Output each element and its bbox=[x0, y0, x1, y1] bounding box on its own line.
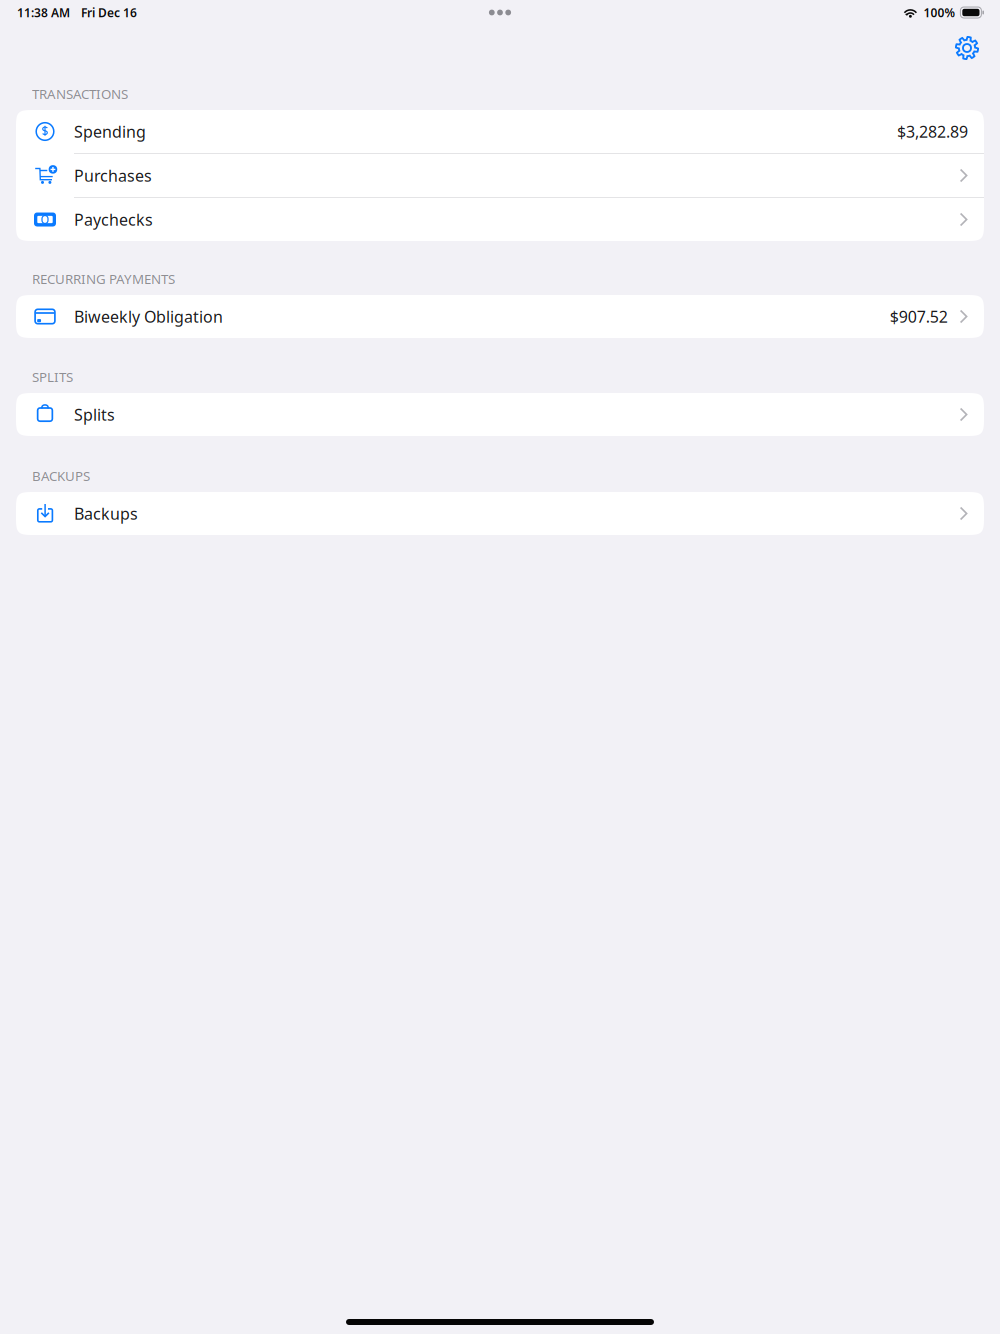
staticText: Spending bbox=[74, 121, 146, 142]
staticText: $3,282.89 bbox=[897, 121, 968, 142]
button[interactable]: Paychecks bbox=[16, 198, 984, 241]
staticText: 100% bbox=[923, 4, 955, 20]
staticText: Paychecks bbox=[74, 209, 153, 230]
staticText: Purchases bbox=[74, 165, 152, 186]
staticText: BACKUPS bbox=[32, 467, 90, 485]
staticText: TRANSACTIONS bbox=[32, 85, 128, 103]
staticText: SPLITS bbox=[32, 368, 73, 386]
button[interactable]: Biweekly Obligation bbox=[16, 295, 984, 338]
staticText: Fri Dec 16 bbox=[81, 4, 137, 20]
staticText: 11:38 AM bbox=[17, 4, 70, 20]
button[interactable]: Splits bbox=[16, 393, 984, 436]
button[interactable]: Purchases bbox=[16, 154, 984, 197]
staticText: Splits bbox=[74, 404, 115, 425]
button[interactable]: Backups bbox=[16, 492, 984, 535]
staticText: Biweekly Obligation bbox=[74, 306, 223, 327]
button[interactable]: Settings bbox=[945, 30, 989, 66]
staticText: $907.52 bbox=[890, 306, 948, 327]
button[interactable]: Spending bbox=[16, 110, 984, 153]
staticText: Backups bbox=[74, 503, 138, 524]
staticText: RECURRING PAYMENTS bbox=[32, 270, 175, 288]
